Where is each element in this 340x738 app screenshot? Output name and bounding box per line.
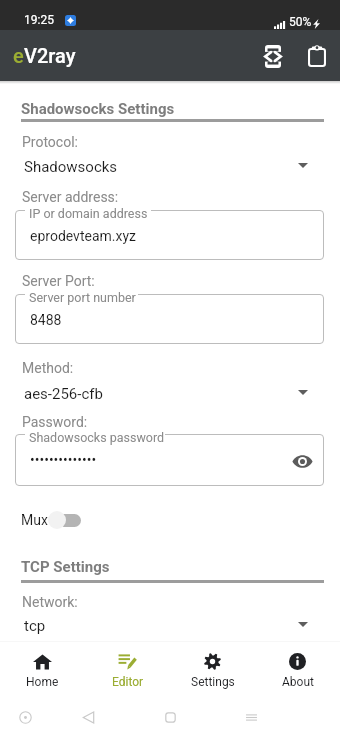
button[interactable]: aes-256-cfb <box>0 383 340 405</box>
staticText: About <box>282 675 314 689</box>
staticText: aes-256-cfb <box>24 385 103 403</box>
button[interactable]: Settings <box>170 642 255 700</box>
staticText: Mux <box>21 512 48 528</box>
button[interactable] <box>47 509 81 531</box>
staticText: 19:25 <box>24 13 54 27</box>
staticText: Protocol: <box>22 134 78 150</box>
staticText: •••••••••••••• <box>30 452 97 468</box>
staticText: Server address: <box>22 189 119 205</box>
staticText: 50% <box>289 15 312 29</box>
button[interactable]: tcp <box>0 615 340 637</box>
staticText: IP or domain address <box>29 206 148 221</box>
staticText: V2ray <box>24 44 76 67</box>
staticText: TCP Settings <box>21 558 110 576</box>
staticText: 8488 <box>30 312 62 328</box>
button[interactable]: Home <box>0 642 85 700</box>
staticText: eprodevteam.xyz <box>30 228 136 244</box>
staticText: Network: <box>22 594 78 610</box>
staticText: Password: <box>22 414 88 430</box>
button[interactable]: Assistant <box>5 698 45 736</box>
button[interactable]: Paste from clipboard <box>293 32 340 80</box>
staticText: Editor <box>112 675 144 689</box>
button[interactable]: Recent apps <box>231 698 271 736</box>
button[interactable]: Show password <box>287 446 317 476</box>
staticText: Settings <box>191 675 235 689</box>
button[interactable]: Shadowsocks <box>0 156 340 178</box>
staticText: Method: <box>22 360 74 376</box>
button[interactable]: Back <box>68 698 108 736</box>
staticText: e <box>13 44 24 67</box>
staticText: Shadowsocks Settings <box>21 100 175 118</box>
button[interactable]: Home <box>150 698 190 736</box>
staticText: Shadowsocks password <box>29 430 165 445</box>
staticText: Home <box>26 675 59 689</box>
staticText: Shadowsocks <box>24 158 118 176</box>
staticText: Server port number <box>29 290 136 305</box>
button[interactable]: Developer mode <box>249 32 297 80</box>
button[interactable]: About <box>255 642 340 700</box>
staticText: Server Port: <box>22 273 95 289</box>
button[interactable]: Editor <box>85 642 170 700</box>
staticText: tcp <box>24 617 46 635</box>
